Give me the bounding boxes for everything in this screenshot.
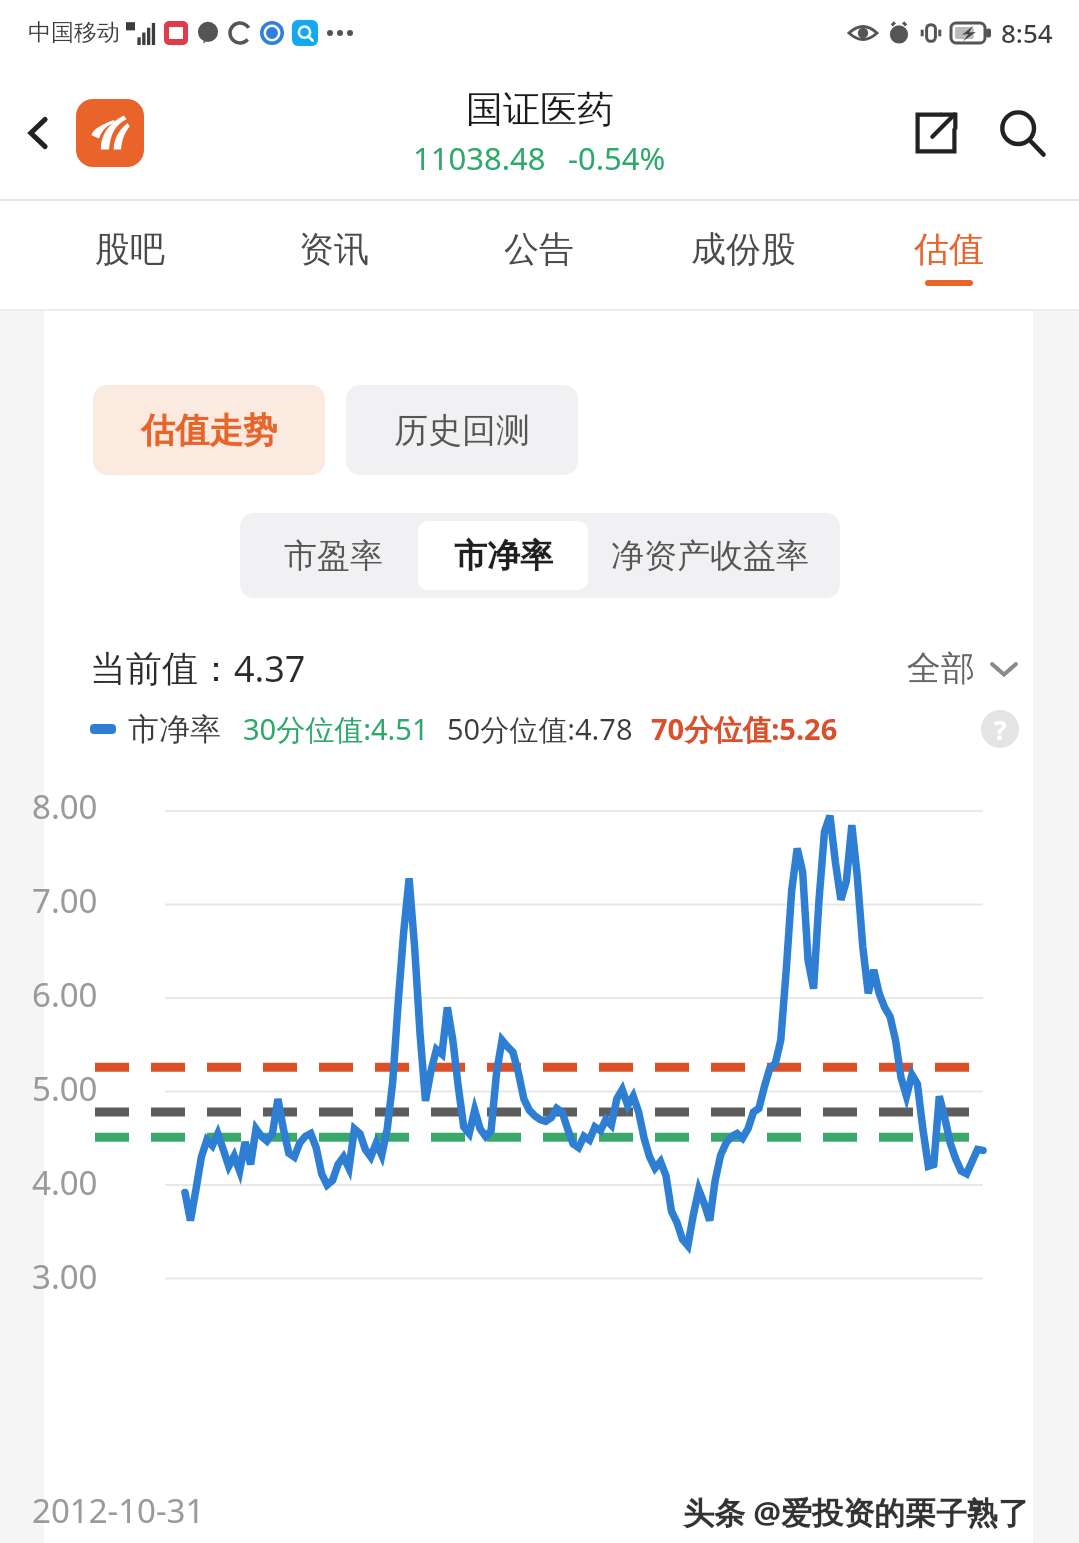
button[interactable]: 估值 — [846, 201, 1051, 311]
staticText: 11038.48 — [413, 137, 546, 179]
button[interactable]: 全部 — [907, 647, 1019, 690]
staticText: 市盈率 — [284, 535, 383, 577]
staticText: 估值走势 — [141, 409, 277, 452]
staticText: 估值 — [914, 227, 984, 271]
button[interactable]: 市净率 — [418, 521, 588, 590]
staticText: 4.00 — [32, 1160, 98, 1205]
button[interactable]: 资讯 — [232, 201, 436, 311]
button[interactable]: 公告 — [436, 201, 641, 311]
staticText: 历史回测 — [394, 409, 530, 452]
staticText: 5.00 — [32, 1066, 98, 1111]
staticText: 资讯 — [299, 227, 369, 271]
staticText: 成份股 — [691, 227, 796, 271]
staticText: 头条 @爱投资的栗子熟了 — [683, 1491, 1029, 1533]
staticText: -0.54% — [568, 137, 666, 179]
staticText: 全部 — [907, 647, 975, 690]
staticText: 70分位值:5.26 — [651, 709, 838, 749]
button[interactable]: Help — [981, 710, 1019, 748]
staticText: 30分位值:4.51 — [243, 709, 429, 749]
button[interactable]: 净资产收益率 — [588, 521, 832, 590]
staticText: 股吧 — [95, 227, 165, 271]
staticText: 国证医药 — [466, 86, 614, 133]
button[interactable]: 股吧 — [28, 201, 232, 311]
staticText: 8:54 — [1001, 15, 1053, 50]
button[interactable]: Search — [985, 96, 1059, 170]
button[interactable]: Share — [899, 96, 973, 170]
staticText: 3.00 — [32, 1254, 98, 1299]
staticText: 公告 — [504, 227, 574, 271]
button[interactable]: 市盈率 — [248, 521, 418, 590]
staticText: 50分位值:4.78 — [447, 709, 633, 749]
button[interactable]: 历史回测 — [346, 385, 578, 475]
staticText: 4.37 — [234, 644, 306, 693]
staticText: 净资产收益率 — [611, 535, 809, 577]
staticText: 8.00 — [32, 784, 98, 829]
staticText: ? — [994, 712, 1007, 747]
button[interactable]: 成份股 — [641, 201, 846, 311]
staticText: 市净率 — [454, 535, 553, 577]
staticText: 当前值： — [90, 646, 234, 691]
staticText: 市净率 — [128, 710, 221, 749]
button[interactable]: 估值走势 — [93, 385, 325, 475]
button[interactable]: Back — [8, 102, 70, 164]
staticText: 7.00 — [32, 878, 98, 923]
button[interactable]: App logo — [76, 99, 144, 167]
staticText: 中国移动 — [28, 18, 120, 47]
staticText: 2012-10-31 — [32, 1488, 205, 1533]
staticText: 6.00 — [32, 972, 98, 1017]
